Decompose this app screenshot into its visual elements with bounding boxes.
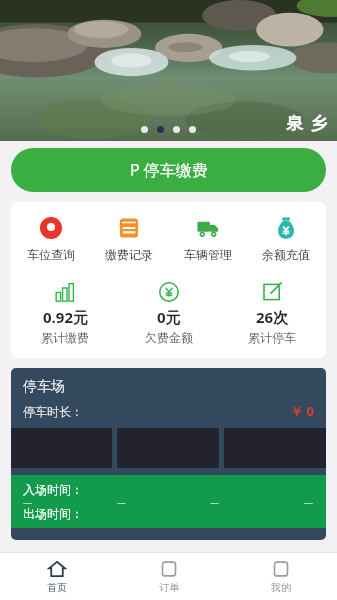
staticText: — (23, 496, 33, 508)
staticText: 26次 (256, 307, 289, 327)
staticText: 车辆管理 (184, 247, 232, 262)
staticText: 缴费记录 (105, 247, 153, 262)
other: 缴费记录 (117, 216, 141, 240)
staticText: 停车场 (23, 378, 65, 396)
button[interactable]: 余额充值 (248, 214, 324, 264)
staticText: 泉 (286, 113, 303, 134)
staticText: — (117, 496, 127, 508)
other: 车位查询 (39, 216, 63, 240)
button[interactable]: 车辆管理 (170, 214, 246, 264)
other: 累计缴费 (55, 282, 75, 302)
button[interactable]: 欠费金额 (119, 280, 219, 347)
staticText: — (210, 496, 220, 508)
other: 余额充值 (274, 216, 298, 240)
staticText: ￥ 0 (290, 402, 314, 420)
staticText: 0元 (157, 307, 181, 327)
staticText: 订单 (159, 581, 179, 594)
button[interactable]: 车位查询 (13, 214, 89, 264)
button[interactable]: 累计停车 (222, 280, 322, 347)
other: 累计停车 (262, 282, 282, 302)
staticText: 累计缴费 (41, 330, 89, 345)
staticText: 停车时长： (23, 404, 83, 419)
button[interactable]: 缴费记录 (91, 214, 167, 264)
staticText: 车位查询 (27, 247, 75, 262)
staticText: 欠费金额 (145, 330, 193, 345)
staticText: 首页 (47, 581, 67, 594)
staticText: 累计停车 (248, 330, 296, 345)
staticText: 出场时间： (23, 506, 83, 521)
button[interactable]: 累计缴费 (15, 280, 115, 347)
staticText: 余额充值 (262, 247, 310, 262)
other: 欠费金额 (159, 282, 179, 302)
other: 车辆管理 (196, 216, 220, 240)
staticText: — (304, 496, 314, 508)
button[interactable]: P 停车缴费 (11, 148, 326, 192)
staticText: 0.92元 (43, 307, 88, 327)
button[interactable]: 首页 (0, 553, 113, 600)
button[interactable]: 订单 (113, 553, 225, 600)
staticText: 我的 (271, 581, 291, 594)
staticText: 乡 (310, 113, 327, 134)
button[interactable]: 我的 (225, 553, 337, 600)
staticText: P 停车缴费 (130, 159, 208, 181)
staticText: 入场时间： (23, 482, 83, 497)
